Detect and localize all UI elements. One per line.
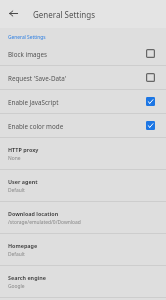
- staticText: Default: [8, 187, 25, 194]
- staticText: Enable JavaScript: [8, 98, 59, 107]
- button[interactable]: Search engine: [0, 266, 166, 298]
- staticText: Homepage: [8, 242, 38, 249]
- button[interactable]: Back: [0, 1, 26, 27]
- button[interactable]: Homepage: [0, 234, 166, 266]
- button[interactable]: Enable color mode: [0, 114, 166, 138]
- staticText: General Settings: [8, 34, 46, 41]
- staticText: Search engine: [8, 274, 46, 281]
- button[interactable]: Enable JavaScript: [0, 90, 166, 114]
- staticText: User agent: [8, 178, 38, 185]
- button[interactable]: HTTP proxy: [0, 138, 166, 170]
- staticText: None: [8, 155, 21, 162]
- staticText: General Settings: [33, 9, 96, 20]
- staticText: HTTP proxy: [8, 146, 39, 153]
- staticText: Google: [8, 283, 25, 290]
- button[interactable]: User agent: [0, 170, 166, 202]
- button[interactable]: Block images: [0, 42, 166, 66]
- button[interactable]: Request 'Save-Data': [0, 66, 166, 90]
- staticText: Default: [8, 251, 25, 258]
- staticText: Block images: [8, 50, 48, 59]
- staticText: /storage/emulated/0/Download: [8, 219, 81, 226]
- staticText: Request 'Save-Data': [8, 74, 67, 83]
- button[interactable]: Download location: [0, 202, 166, 234]
- staticText: Download location: [8, 210, 59, 217]
- staticText: Enable color mode: [8, 122, 64, 131]
